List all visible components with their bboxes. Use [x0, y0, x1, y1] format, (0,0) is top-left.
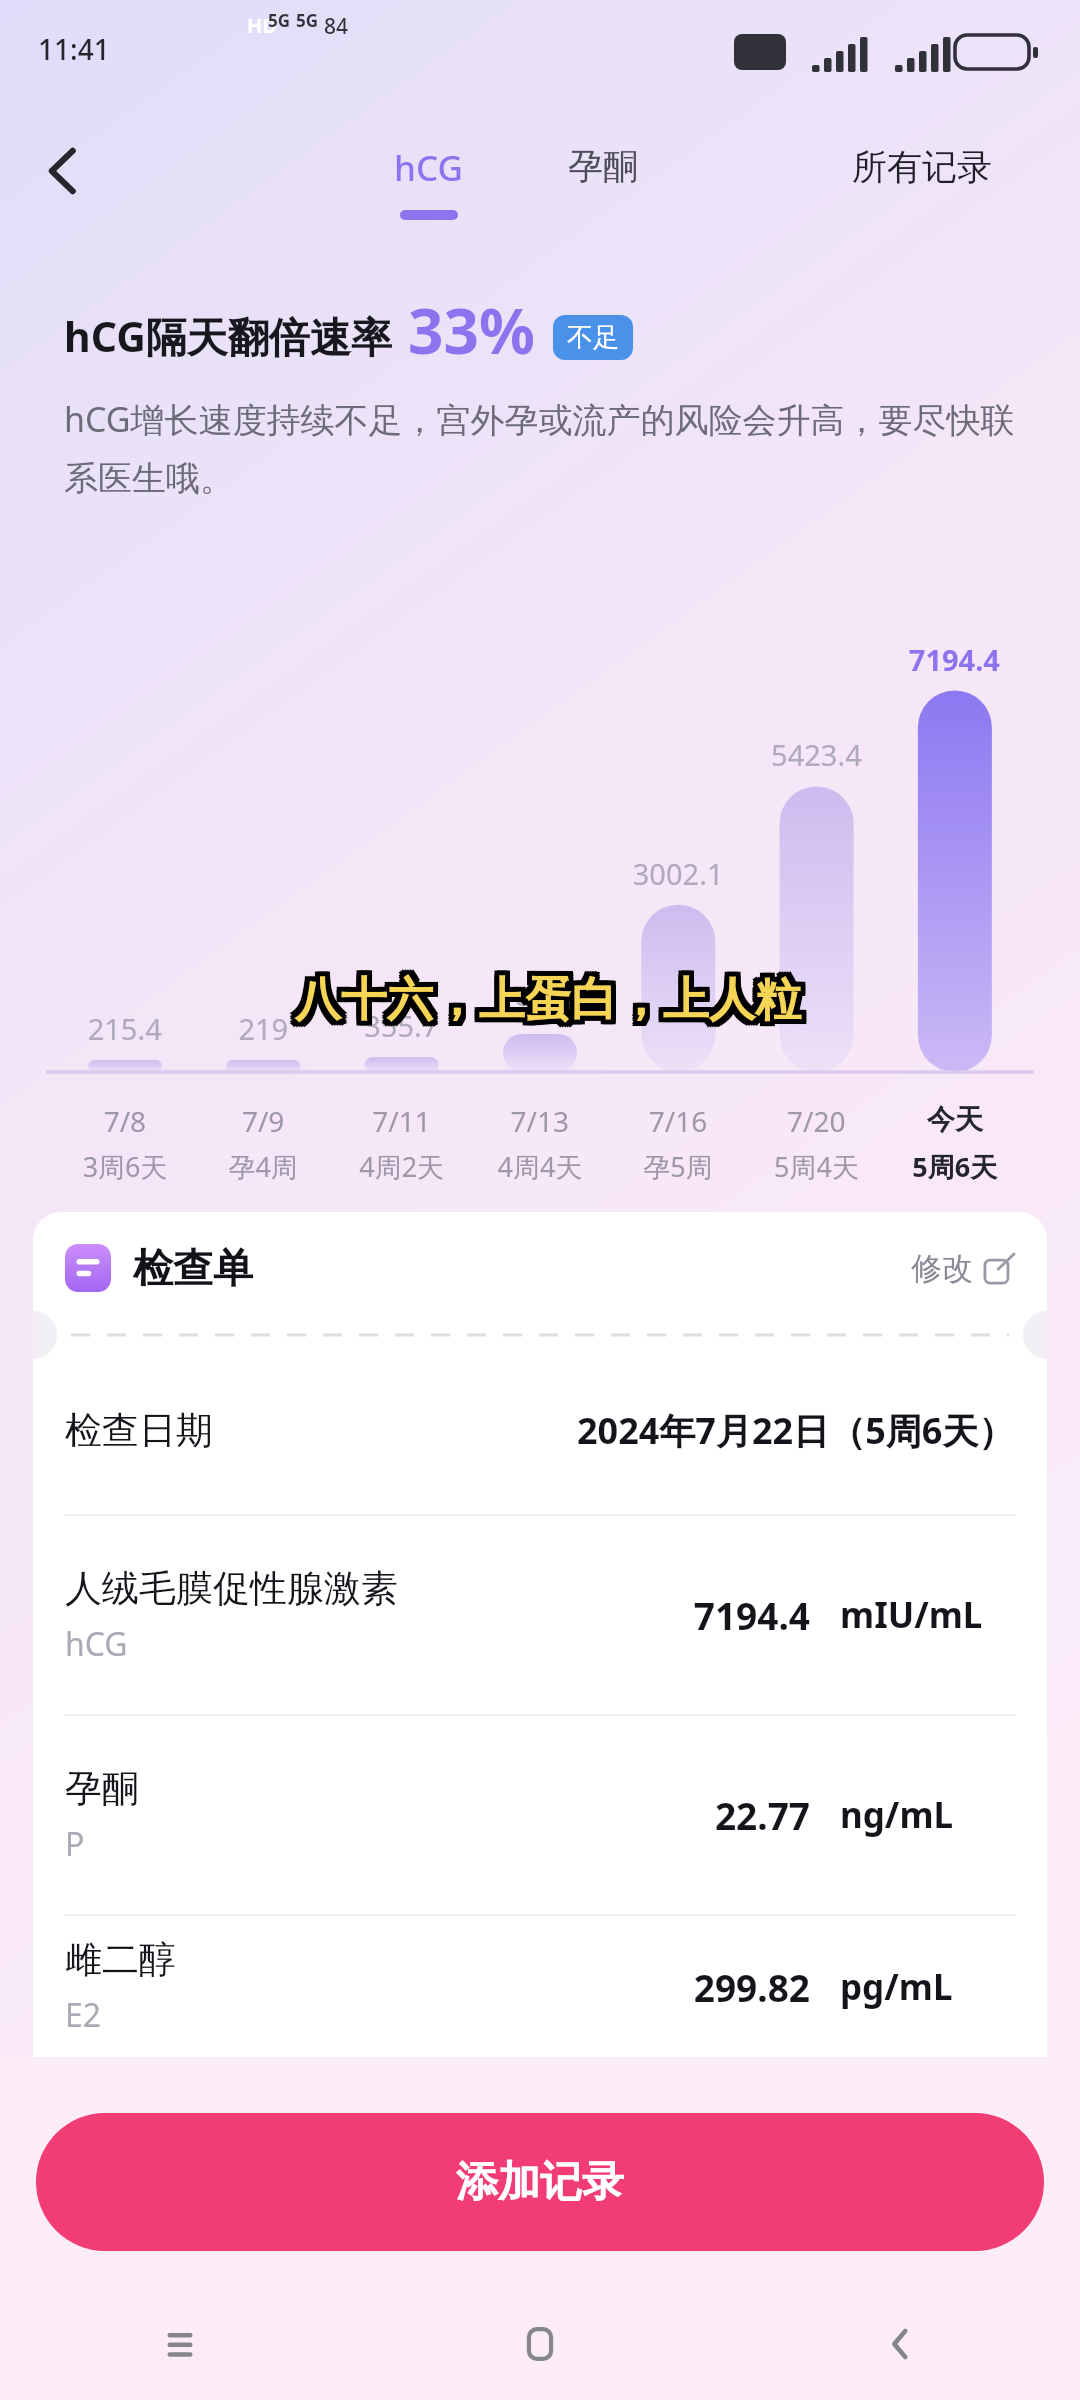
- staticText: 299.82: [620, 1962, 810, 2012]
- button[interactable]: 修改: [911, 1249, 1015, 1288]
- staticText: P: [65, 1822, 85, 1866]
- button[interactable]: 人绒毛膜促性腺激素: [33, 1516, 1047, 1714]
- button[interactable]: 雌二醇: [33, 1916, 1047, 2057]
- staticText: ng/mL: [840, 1791, 1015, 1839]
- button[interactable]: 所有记录: [852, 145, 992, 189]
- staticText: 孕酮: [65, 1765, 139, 1812]
- staticText: hCG: [394, 144, 463, 192]
- staticText: 5G: [296, 9, 319, 32]
- staticText: HD: [247, 12, 277, 39]
- staticText: 所有记录: [852, 145, 992, 189]
- staticText: 孕酮: [568, 144, 638, 188]
- staticText: mIU/mL: [840, 1591, 1015, 1639]
- button[interactable]: 检查日期: [33, 1346, 1047, 1514]
- staticText: 不足: [567, 321, 619, 354]
- staticText: 7194.4: [620, 1590, 810, 1640]
- staticText: 人绒毛膜促性腺激素: [65, 1565, 398, 1612]
- button[interactable]: Recents: [0, 2288, 360, 2400]
- button[interactable]: hCG: [394, 144, 463, 220]
- staticText: 84: [324, 12, 349, 41]
- staticText: E2: [65, 1993, 102, 2037]
- staticText: 检查日期: [65, 1407, 213, 1454]
- button[interactable]: 孕酮: [568, 144, 638, 188]
- staticText: hCG隔天翻倍速率: [64, 308, 392, 364]
- staticText: 11:41: [38, 30, 110, 68]
- button[interactable]: 添加记录: [36, 2113, 1044, 2251]
- staticText: 33%: [408, 288, 535, 372]
- staticText: pg/mL: [840, 1963, 1015, 2011]
- staticText: 雌二醇: [65, 1936, 176, 1983]
- staticText: 2024年7月22日（5周6天）: [577, 1406, 1015, 1455]
- button[interactable]: Back: [26, 132, 104, 210]
- button[interactable]: Home: [360, 2288, 720, 2400]
- staticText: 5G: [268, 9, 291, 32]
- staticText: 添加记录: [456, 2156, 624, 2209]
- staticText: hCG: [65, 1622, 128, 1666]
- staticText: 22.77: [620, 1790, 810, 1840]
- button[interactable]: Back: [720, 2288, 1080, 2400]
- staticText: 检查单: [133, 1243, 253, 1293]
- staticText: 修改: [911, 1249, 973, 1288]
- staticText: hCG增长速度持续不足，宫外孕或流产的风险会升高，要尽快联系医生哦。: [64, 396, 1020, 500]
- button[interactable]: 孕酮: [33, 1716, 1047, 1914]
